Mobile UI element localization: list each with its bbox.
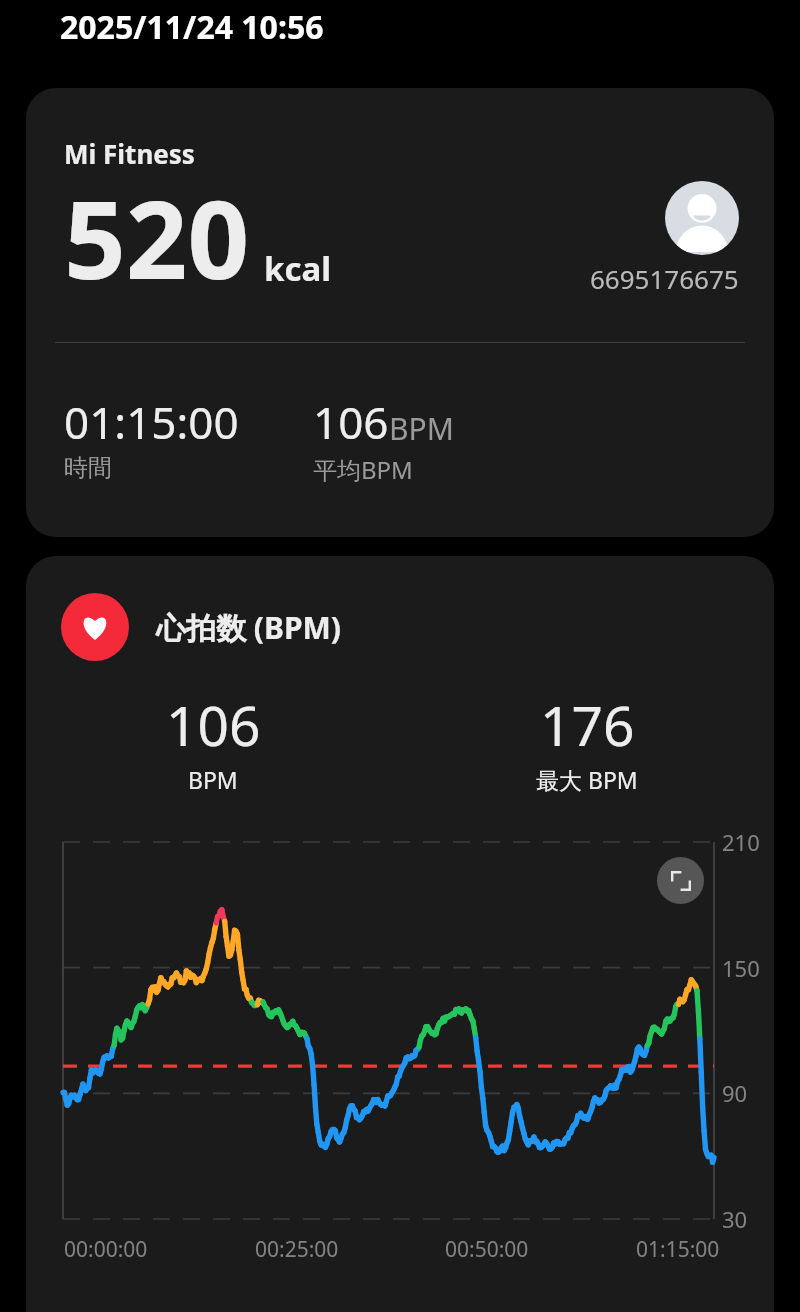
staticText: BPM (389, 408, 454, 449)
staticText: BPM (188, 764, 238, 795)
staticText: 00:00:00 (64, 1235, 148, 1264)
staticText: 106 (166, 687, 261, 762)
button[interactable]: Mi Fitness (26, 88, 774, 537)
staticText: 心拍数 (BPM) (156, 607, 342, 648)
button[interactable]: 心拍数 (BPM) (26, 556, 774, 1312)
staticText: 520 (64, 164, 250, 311)
staticText: 150 (722, 953, 760, 983)
staticText: 30 (722, 1204, 748, 1234)
staticText: 210 (722, 827, 760, 857)
button[interactable]: Fullscreen (657, 857, 704, 904)
staticText: 平均BPM (313, 453, 413, 486)
staticText: 90 (722, 1078, 748, 1108)
staticText: 時間 (64, 453, 112, 483)
staticText: 01:15:00 (636, 1235, 720, 1264)
staticText: 176 (540, 687, 635, 762)
staticText: 00:50:00 (445, 1235, 529, 1264)
staticText: 最大 BPM (536, 764, 638, 795)
staticText: Mi Fitness (64, 136, 195, 171)
staticText: 6695176675 (590, 261, 739, 296)
staticText: kcal (264, 246, 332, 291)
staticText: 01:15:00 (64, 392, 239, 452)
staticText: 106 (313, 392, 389, 452)
button[interactable]: Profile (665, 181, 739, 255)
button[interactable]: 心拍数 (BPM) (61, 593, 342, 661)
staticText: 00:25:00 (255, 1235, 339, 1264)
staticText: 2025/11/24 10:56 (60, 5, 324, 49)
